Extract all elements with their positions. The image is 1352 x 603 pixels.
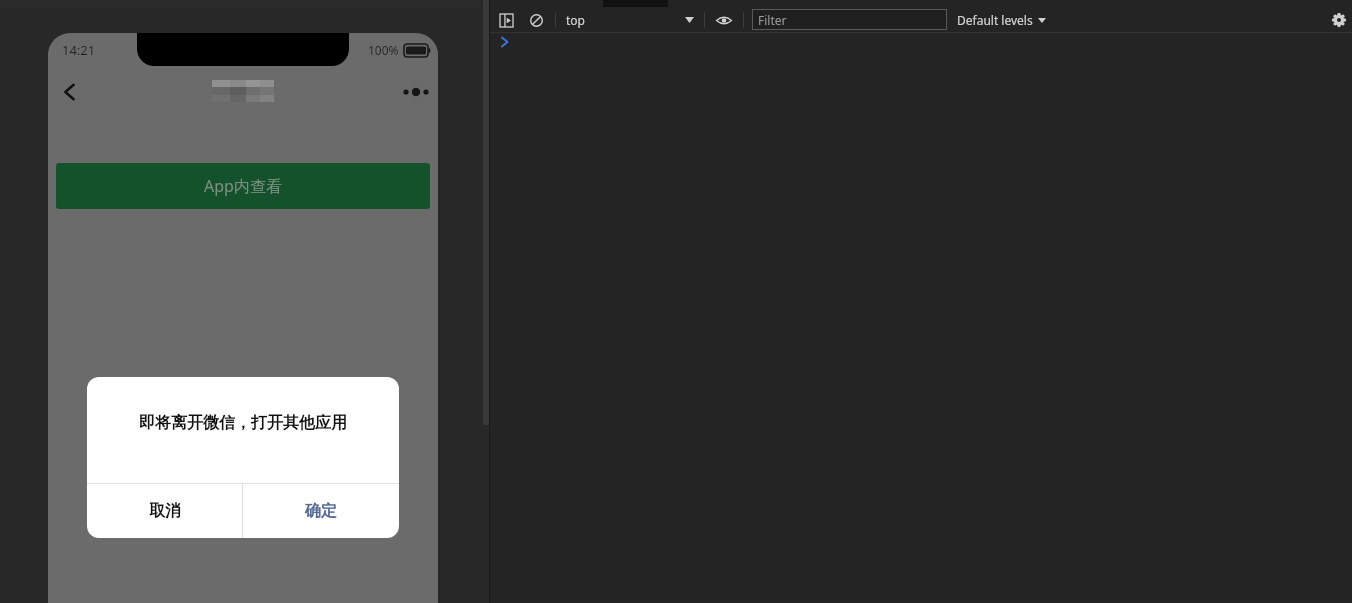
staticText: 即将离开微信，打开其他应用 (139, 413, 347, 433)
button[interactable]: Live expressions (713, 9, 735, 31)
button[interactable]: 取消 (87, 484, 242, 538)
staticText: 14:21 (62, 41, 96, 59)
staticText: App内查看 (204, 175, 282, 197)
button[interactable]: Back (48, 70, 92, 114)
button[interactable]: top (566, 9, 585, 31)
button[interactable]: Clear console (525, 9, 547, 31)
button[interactable]: Toggle sidebar (495, 9, 517, 31)
button[interactable]: Settings (1328, 9, 1350, 31)
staticText: Default levels (957, 12, 1033, 28)
button[interactable]: 确定 (243, 484, 399, 538)
button[interactable]: App内查看 (56, 163, 430, 209)
button[interactable]: Default levels (957, 9, 1046, 31)
staticText: top (566, 12, 585, 28)
staticText: Filter (758, 12, 787, 28)
button[interactable]: More options (394, 70, 438, 114)
staticText: 100% (368, 42, 399, 58)
button[interactable]: Filter (752, 9, 947, 30)
staticText: 取消 (149, 501, 181, 521)
staticText: 确定 (305, 501, 337, 521)
